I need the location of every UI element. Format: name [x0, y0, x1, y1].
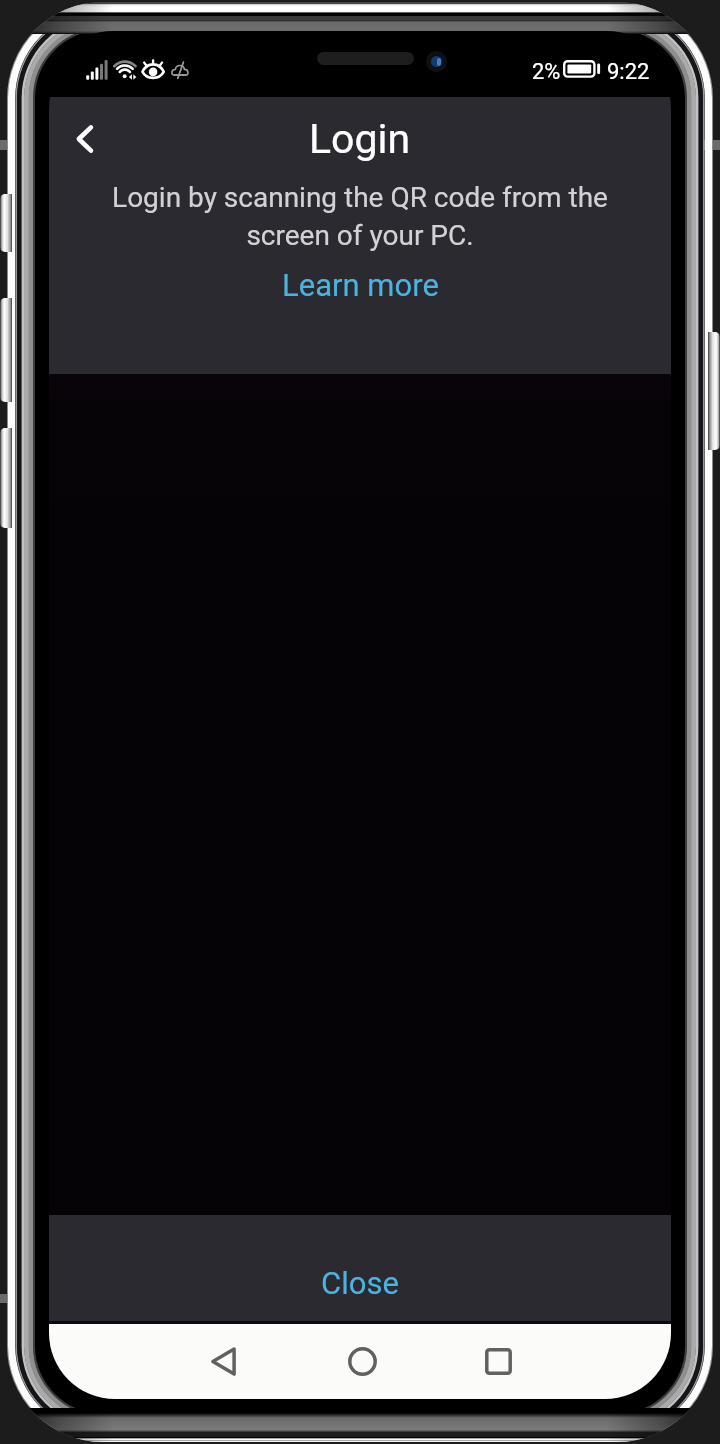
button[interactable]: Back	[179, 1326, 267, 1396]
button[interactable]: Learn more	[262, 259, 459, 311]
staticText: 2%	[532, 59, 561, 85]
staticText: Learn more	[282, 267, 439, 303]
staticText: Login	[309, 115, 411, 163]
staticText: Login by scanning the QR code from the s…	[73, 181, 647, 252]
button[interactable]: Home	[318, 1326, 406, 1396]
button[interactable]: Back	[55, 108, 117, 170]
staticText: 9:22	[607, 59, 650, 85]
button[interactable]: Recent apps	[454, 1326, 542, 1396]
button[interactable]: Close	[49, 1215, 671, 1321]
staticText: Close	[321, 1265, 399, 1301]
